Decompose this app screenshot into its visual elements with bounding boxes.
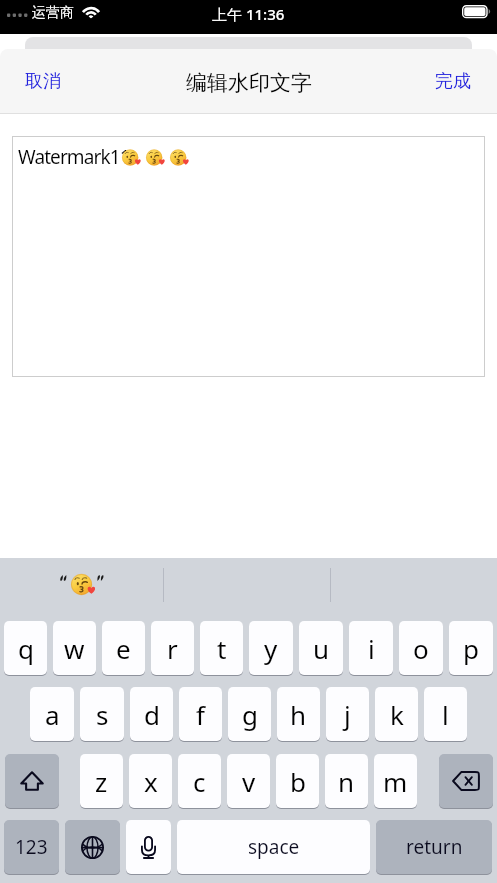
staticText: l [442, 697, 449, 732]
button[interactable]: x [129, 754, 172, 808]
staticText: x [144, 764, 158, 799]
staticText: 123 [15, 834, 48, 860]
staticText: h [290, 697, 307, 732]
button[interactable]: 完成 [417, 61, 497, 102]
staticText: Watermark11 [18, 144, 130, 170]
staticText: r [167, 631, 178, 666]
staticText: return [406, 834, 463, 860]
button[interactable]: b [276, 754, 319, 808]
button[interactable]: d [130, 687, 173, 741]
button[interactable]: Shift [5, 754, 59, 808]
staticText: w [64, 631, 85, 666]
staticText: k [390, 697, 404, 732]
button[interactable]: f [179, 687, 222, 741]
staticText: j [344, 697, 351, 732]
staticText: f [196, 697, 205, 732]
staticText: g [242, 697, 258, 732]
staticText: t [217, 631, 227, 666]
staticText: b [290, 764, 306, 799]
staticText: z [95, 764, 108, 799]
button[interactable]: a [30, 687, 74, 741]
staticText: s [96, 697, 109, 732]
button[interactable]: y [249, 621, 293, 675]
staticText: c [193, 764, 206, 799]
staticText: v [242, 764, 256, 799]
button[interactable]: t [200, 621, 243, 675]
button[interactable]: w [53, 621, 96, 675]
staticText: p [463, 631, 479, 666]
button[interactable]: j [326, 687, 369, 741]
staticText: n [338, 764, 355, 799]
button[interactable]: c [178, 754, 221, 808]
button[interactable]: Next keyboard [65, 820, 120, 874]
button[interactable]: s [80, 687, 124, 741]
staticText: i [368, 631, 375, 666]
button[interactable]: n [325, 754, 368, 808]
staticText: y [264, 631, 278, 666]
staticText: 编辑水印文字 [186, 70, 312, 96]
button[interactable]: h [277, 687, 320, 741]
staticText: 取消 [25, 70, 61, 93]
staticText: u [313, 631, 330, 666]
staticText: a [45, 697, 60, 732]
button[interactable]: m [374, 754, 417, 808]
button[interactable]: o [399, 621, 443, 675]
staticText: m [383, 764, 408, 799]
button[interactable]: return [376, 820, 492, 874]
staticText: 上午 11:36 [212, 4, 285, 24]
button[interactable]: u [299, 621, 343, 675]
button[interactable]: e [102, 621, 145, 675]
staticText: o [413, 631, 429, 666]
button[interactable]: 123 [4, 820, 59, 874]
button[interactable]: Watermark11 [12, 136, 485, 377]
button[interactable]: p [449, 621, 493, 675]
staticText: 完成 [435, 70, 471, 93]
button[interactable]: l [424, 687, 467, 741]
staticText: space [248, 834, 300, 860]
button[interactable]: i [349, 621, 393, 675]
button[interactable]: z [80, 754, 123, 808]
button[interactable]: Backspace [439, 754, 493, 808]
button[interactable]: r [151, 621, 194, 675]
button[interactable]: q [4, 621, 47, 675]
button[interactable]: g [228, 687, 271, 741]
button[interactable]: space [177, 820, 370, 874]
staticText: q [18, 631, 34, 666]
staticText: e [116, 631, 131, 666]
button[interactable]: Dictation [126, 820, 171, 874]
button[interactable]: 取消 [0, 61, 79, 102]
button[interactable] [0, 558, 165, 621]
staticText: 运营商 [32, 4, 74, 22]
staticText: d [144, 697, 160, 732]
button[interactable]: v [227, 754, 270, 808]
button[interactable]: k [375, 687, 418, 741]
